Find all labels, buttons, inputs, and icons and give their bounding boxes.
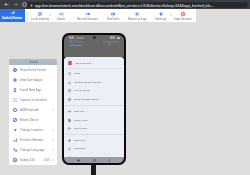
staticText: 46% bbox=[110, 36, 116, 40]
button[interactable]: Download bbox=[64, 144, 124, 152]
staticText: Local testing bbox=[31, 17, 49, 21]
button[interactable]: Make available offline bbox=[64, 95, 124, 103]
button[interactable]: Local testing bbox=[27, 9, 53, 22]
staticText: Download bbox=[74, 147, 86, 150]
button[interactable]: Throttle Network bbox=[9, 135, 57, 145]
staticText: Rotate Device bbox=[20, 118, 39, 122]
staticText: Install New App bbox=[20, 88, 42, 92]
button[interactable]: Reload bbox=[20, 0, 29, 9]
staticText: Voice 006.m4a bbox=[75, 61, 92, 64]
staticText: Settings bbox=[155, 17, 167, 21]
staticText: My Drive bbox=[69, 40, 82, 44]
button[interactable]: Stop Session bbox=[170, 9, 196, 22]
staticText: DevTools bbox=[107, 17, 120, 21]
staticText: Show Home Screen bbox=[20, 68, 47, 72]
button[interactable]: Open with bbox=[64, 136, 124, 144]
staticText: Computers bbox=[103, 40, 120, 44]
button[interactable]: Share bbox=[64, 69, 124, 77]
staticText: ADB/Uninstall bbox=[20, 108, 39, 112]
staticText: 9:41 bbox=[69, 36, 75, 40]
staticText: Record Session bbox=[77, 17, 99, 21]
button[interactable]: Zoom bbox=[48, 9, 74, 22]
button[interactable]: Add to Starred bbox=[64, 86, 124, 94]
staticText: Galaxy S24 bbox=[20, 158, 35, 162]
button[interactable]: Galaxy S24 bbox=[9, 155, 57, 165]
button[interactable]: Switch Device bbox=[0, 9, 25, 22]
button[interactable]: Record Session bbox=[75, 9, 101, 22]
button[interactable]: Recents bbox=[77, 159, 80, 162]
button[interactable]: Capture Screenshot bbox=[9, 95, 57, 105]
staticText: v14.0 bbox=[43, 158, 50, 162]
staticText: Report a bug bbox=[128, 17, 147, 21]
staticText: Share bbox=[74, 72, 81, 75]
button[interactable]: Manage people and links bbox=[64, 78, 124, 86]
staticText: Throttle Network bbox=[20, 138, 44, 142]
button[interactable]: Report a bug bbox=[124, 9, 150, 22]
staticText: Change Language bbox=[20, 148, 45, 152]
staticText: Manage people and links bbox=[74, 81, 102, 84]
staticText: Add to Starred bbox=[74, 89, 90, 92]
button[interactable]: Make a copy bbox=[64, 116, 124, 124]
button[interactable]: Change Language bbox=[9, 145, 57, 155]
button[interactable]: DevTools bbox=[100, 9, 126, 22]
button[interactable]: Forward bbox=[11, 0, 20, 9]
button[interactable]: Rotate Device bbox=[9, 115, 57, 125]
button[interactable]: Back bbox=[2, 0, 11, 9]
button[interactable]: ADB/Uninstall bbox=[9, 105, 57, 115]
button[interactable]: Change Location bbox=[9, 125, 57, 135]
button[interactable]: View Open Apps bbox=[9, 75, 57, 85]
staticText: Make available offline bbox=[74, 98, 99, 101]
button[interactable]: Copy link bbox=[64, 107, 124, 115]
button[interactable]: Back bbox=[108, 159, 111, 162]
button[interactable]: Show Home Screen bbox=[9, 65, 57, 75]
staticText: Zoom bbox=[57, 17, 66, 21]
button[interactable]: Settings bbox=[148, 9, 174, 22]
staticText: Change Location bbox=[20, 128, 43, 132]
staticText: View Open Apps bbox=[20, 78, 43, 82]
staticText: Stop Session bbox=[174, 17, 192, 21]
staticText: Open with bbox=[74, 139, 86, 142]
button[interactable]: app-live.browserstack.com/dashboard#os=a… bbox=[27, 2, 248, 8]
staticText: Send a copy bbox=[74, 127, 88, 130]
staticText: Capture Screenshot bbox=[20, 98, 47, 102]
button[interactable]: Home bbox=[93, 159, 96, 162]
staticText: Switch Device bbox=[2, 16, 23, 20]
button[interactable]: Voice 006.m4a bbox=[64, 57, 124, 68]
button[interactable]: Send a copy bbox=[64, 124, 124, 132]
staticText: Copy link bbox=[74, 110, 85, 113]
staticText: Make a copy bbox=[74, 119, 88, 122]
button[interactable]: Install New App bbox=[9, 85, 57, 95]
staticText: app-live.browserstack.com/dashboard#os=a… bbox=[35, 3, 214, 8]
